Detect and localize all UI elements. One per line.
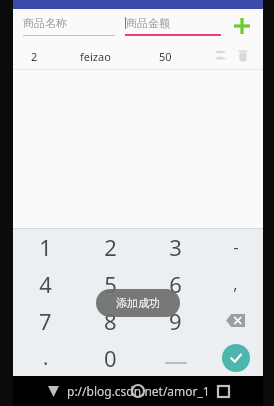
button[interactable]: Home: [126, 379, 150, 403]
staticText: feizao: [80, 49, 111, 64]
staticText: 商品金额: [126, 16, 170, 30]
button[interactable]: Edit: [210, 46, 230, 66]
staticText: 2: [31, 49, 38, 64]
button[interactable]: 4: [13, 265, 78, 302]
button[interactable]: 商品金额: [125, 9, 221, 43]
button[interactable]: -: [208, 229, 263, 265]
button[interactable]: Back: [41, 379, 65, 403]
staticText: 1: [39, 232, 52, 262]
staticText: p://blog.csdn.net/amor_1: [67, 383, 210, 399]
button[interactable]: 2: [13, 43, 263, 69]
staticText: 7: [39, 306, 52, 336]
staticText: .: [43, 344, 49, 371]
button[interactable]: 3: [143, 229, 208, 265]
button[interactable]: 2: [78, 229, 143, 265]
button[interactable]: 5: [78, 265, 143, 302]
staticText: 添加成功: [116, 296, 160, 310]
staticText: 0: [104, 343, 117, 373]
button[interactable]: Space: [143, 339, 208, 376]
button[interactable]: 7: [13, 302, 78, 339]
staticText: 3: [169, 232, 182, 262]
staticText: 50: [159, 49, 172, 64]
button[interactable]: .: [13, 339, 78, 376]
button[interactable]: Add item: [229, 13, 255, 39]
staticText: -: [233, 236, 239, 258]
staticText: 5: [104, 269, 117, 299]
button[interactable]: Recents: [211, 379, 235, 403]
button[interactable]: 6: [143, 265, 208, 302]
staticText: 商品名称: [23, 16, 67, 30]
button[interactable]: 商品名称: [23, 9, 115, 43]
button[interactable]: Delete: [233, 46, 253, 66]
button[interactable]: 1: [13, 229, 78, 265]
button[interactable]: Confirm: [208, 339, 263, 376]
button[interactable]: 9: [143, 302, 208, 339]
staticText: 9: [169, 306, 182, 336]
button[interactable]: ,: [208, 265, 263, 302]
button[interactable]: 8: [78, 302, 143, 339]
staticText: 6: [169, 269, 182, 299]
staticText: 2: [104, 232, 117, 262]
staticText: 4: [39, 269, 52, 299]
staticText: ,: [233, 273, 238, 295]
button[interactable]: Backspace: [208, 302, 263, 339]
staticText: 8: [104, 306, 117, 336]
button[interactable]: 0: [78, 339, 143, 376]
